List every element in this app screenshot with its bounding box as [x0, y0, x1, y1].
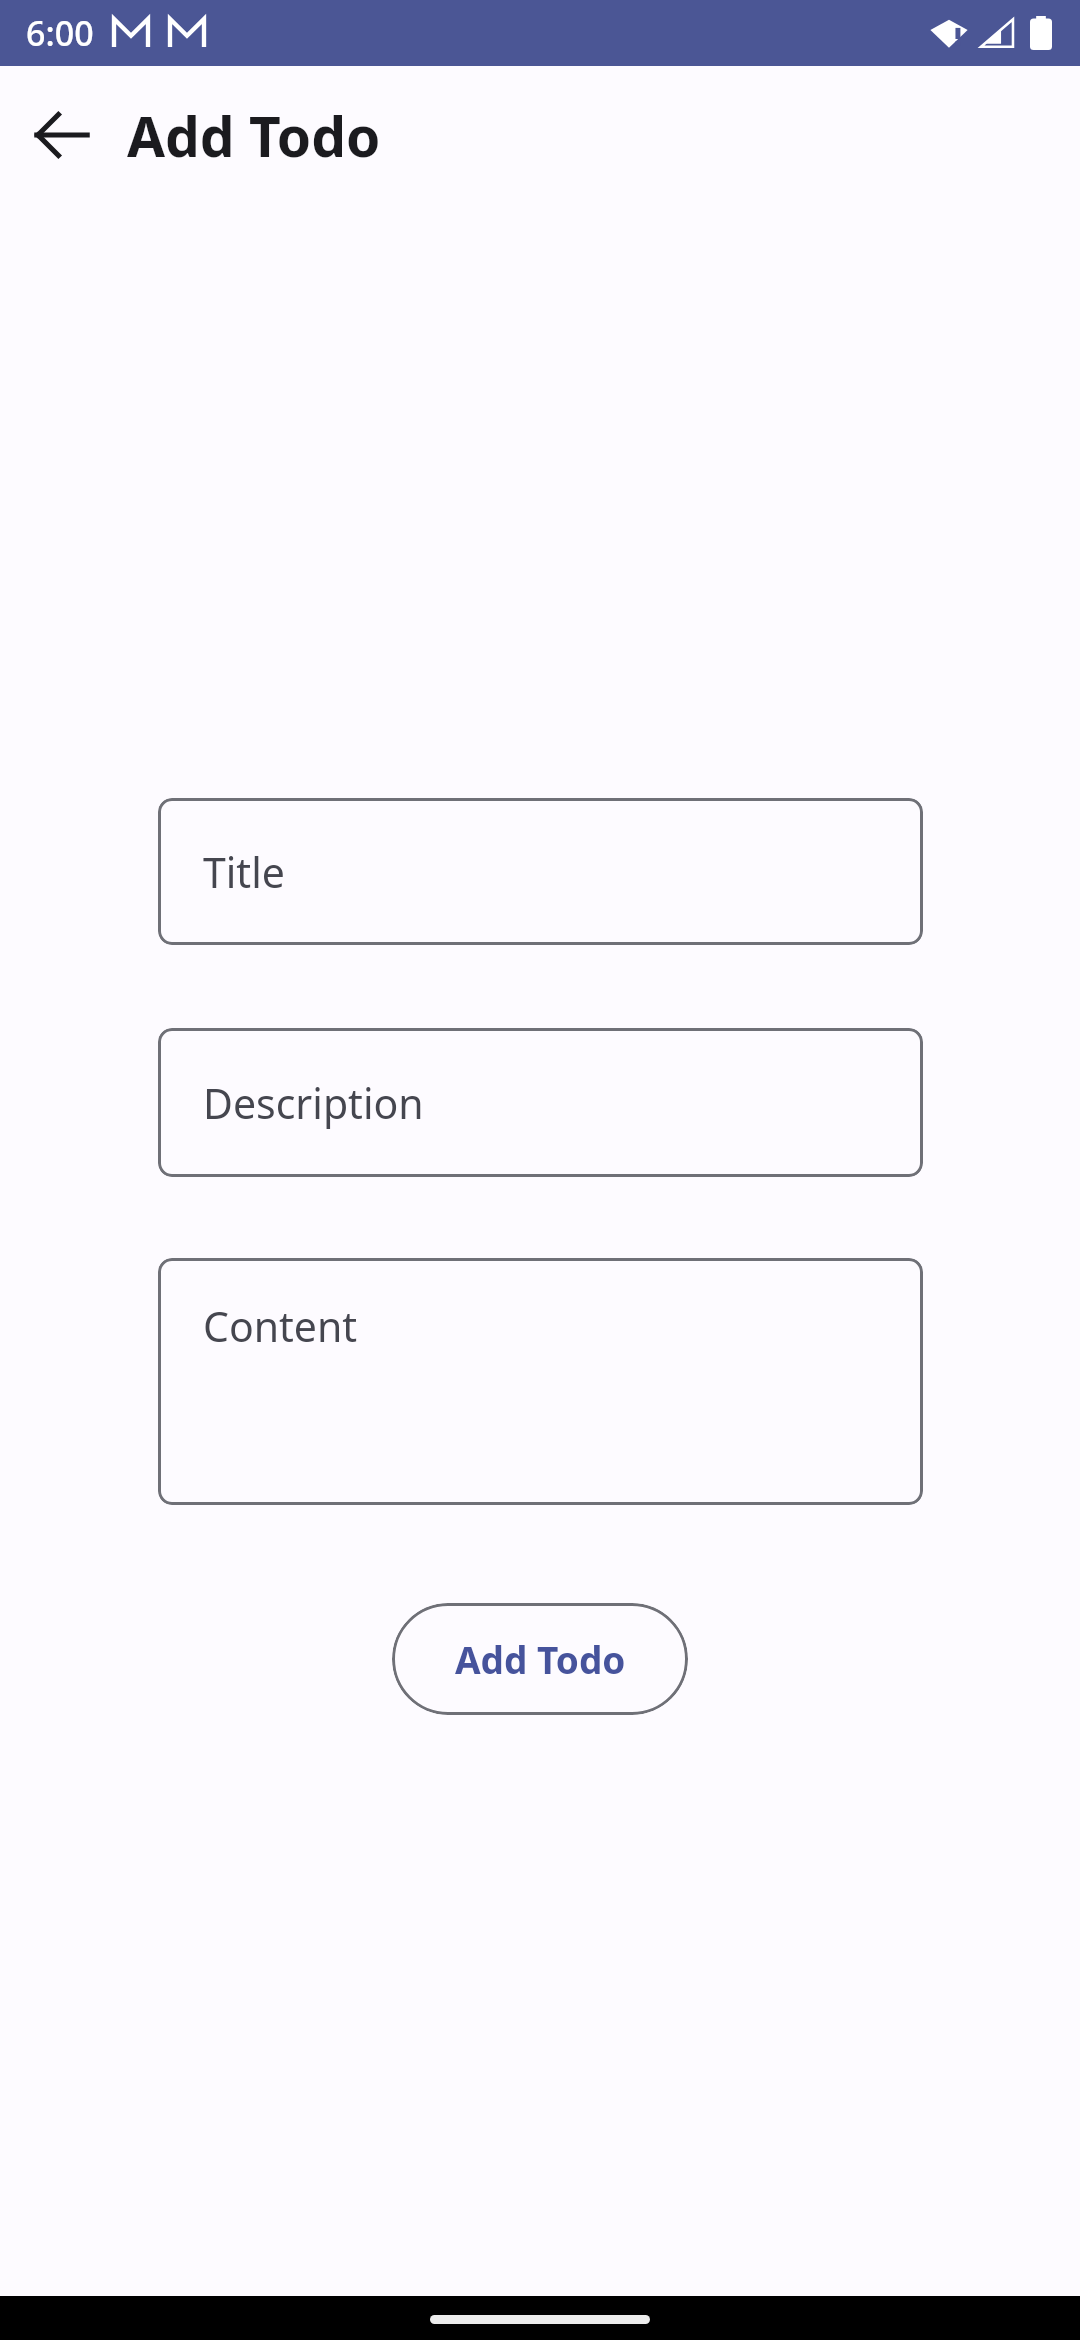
button[interactable]: Content: [158, 1258, 923, 1505]
staticText: Add Todo: [455, 1634, 626, 1684]
staticText: Content: [203, 1298, 358, 1354]
staticText: Title: [203, 844, 285, 900]
staticText: Add Todo: [127, 98, 381, 173]
staticText: Description: [203, 1075, 424, 1131]
staticText: 6:00: [26, 10, 94, 56]
button[interactable]: Description: [158, 1028, 923, 1177]
button[interactable]: Title: [158, 798, 923, 945]
button[interactable]: Back: [18, 91, 106, 179]
button[interactable]: Add Todo: [392, 1603, 688, 1715]
